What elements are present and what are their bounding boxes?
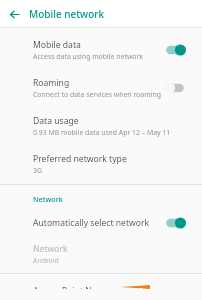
staticText: Automatically select network: [33, 217, 150, 229]
staticText: Access data using mobile network: [33, 52, 143, 61]
staticText: 3G: [33, 166, 42, 175]
staticText: Connect to data services when roaming: [33, 90, 161, 99]
staticText: Mobile network: [29, 7, 105, 21]
staticText: Preferred network type: [33, 153, 127, 165]
button[interactable]: Roaming: [0, 69, 202, 107]
button[interactable]: Preferred network type: [0, 145, 202, 184]
staticText: 4: [138, 285, 143, 289]
button[interactable]: Automatically select network: [0, 211, 202, 237]
button[interactable]: Back: [5, 5, 23, 23]
staticText: Data usage: [33, 115, 79, 127]
staticText: Roaming: [33, 77, 70, 89]
button[interactable]: Mobile data: [0, 32, 202, 69]
staticText: Network: [33, 194, 63, 204]
staticText: Android: [33, 256, 59, 265]
button[interactable]: Data usage: [0, 107, 202, 145]
button[interactable]: Access Point Names: [0, 274, 202, 300]
staticText: Mobile data: [33, 39, 81, 51]
staticText: 0.93 MB mobile data used Apr 12 – May 11: [33, 128, 171, 137]
staticText: Network: [33, 243, 68, 255]
staticText: Access Point Names: [33, 285, 114, 289]
button[interactable]: Network: [0, 237, 202, 273]
